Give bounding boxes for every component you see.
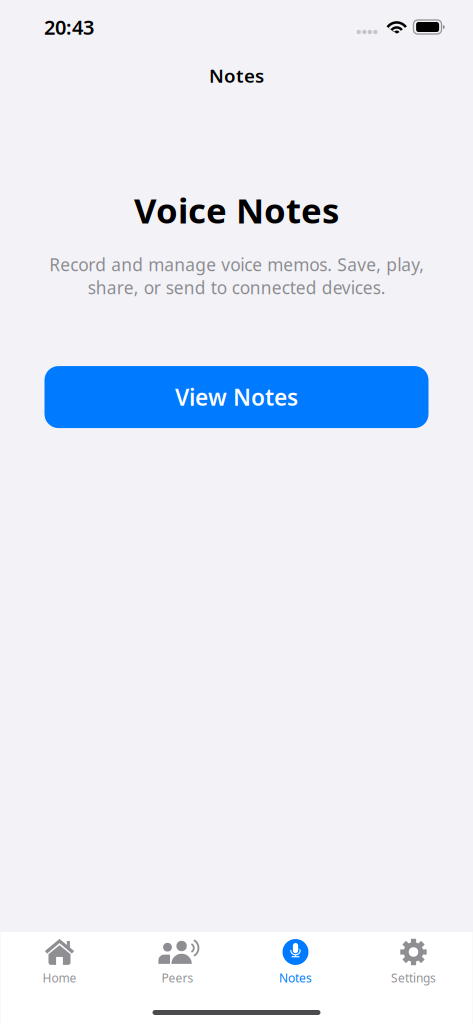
- staticText: View Notes: [175, 382, 298, 412]
- staticText: Notes: [209, 63, 264, 88]
- button[interactable]: Settings: [354, 937, 472, 997]
- staticText: Peers: [161, 970, 193, 986]
- staticText: Record and manage voice memos. Save, pla…: [49, 253, 424, 299]
- staticText: Voice Notes: [134, 187, 339, 233]
- button[interactable]: Peers: [118, 937, 236, 997]
- button[interactable]: Home: [0, 937, 118, 997]
- staticText: Notes: [279, 970, 312, 986]
- staticText: Settings: [391, 970, 436, 986]
- staticText: Home: [42, 970, 76, 986]
- button[interactable]: Notes: [236, 937, 354, 997]
- button[interactable]: View Notes: [44, 366, 428, 428]
- staticText: 20:43: [44, 14, 94, 40]
